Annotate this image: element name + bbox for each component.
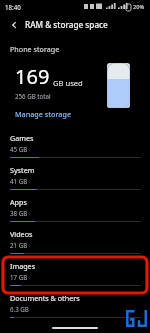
button[interactable]: System	[0, 158, 150, 190]
staticText: Games	[10, 133, 34, 143]
staticText: 45 GB	[10, 145, 28, 153]
staticText: RAM & storage space	[25, 19, 108, 30]
staticText: System	[10, 165, 35, 175]
staticText: Phone storage	[10, 44, 60, 54]
staticText: 21 GB	[10, 241, 28, 249]
staticText: 38 GB	[10, 209, 28, 217]
button[interactable]: Back	[6, 17, 21, 32]
button[interactable]: Manage storage	[15, 109, 72, 119]
staticText: Apps	[10, 197, 27, 207]
button[interactable]: Videos	[0, 222, 150, 254]
staticText: 6.3 GB	[10, 305, 29, 313]
button[interactable]: Apps	[0, 190, 150, 222]
button[interactable]: Images	[0, 254, 150, 286]
staticText: GB used	[53, 78, 83, 88]
staticText: Manage storage	[15, 109, 72, 119]
staticText: Videos	[10, 229, 33, 239]
staticText: 20%	[133, 3, 145, 11]
button[interactable]: Documents & others	[0, 286, 150, 318]
button[interactable]: Back	[0, 13, 150, 35]
button[interactable]: Games	[0, 129, 150, 158]
staticText: 18:40	[5, 3, 21, 11]
staticText: Documents & others	[10, 293, 80, 303]
staticText: 41 GB	[10, 177, 28, 185]
staticText: 17 GB	[10, 273, 28, 281]
staticText: Images	[10, 261, 36, 271]
staticText: 256 GB total	[15, 92, 51, 100]
staticText: 169	[15, 63, 50, 90]
